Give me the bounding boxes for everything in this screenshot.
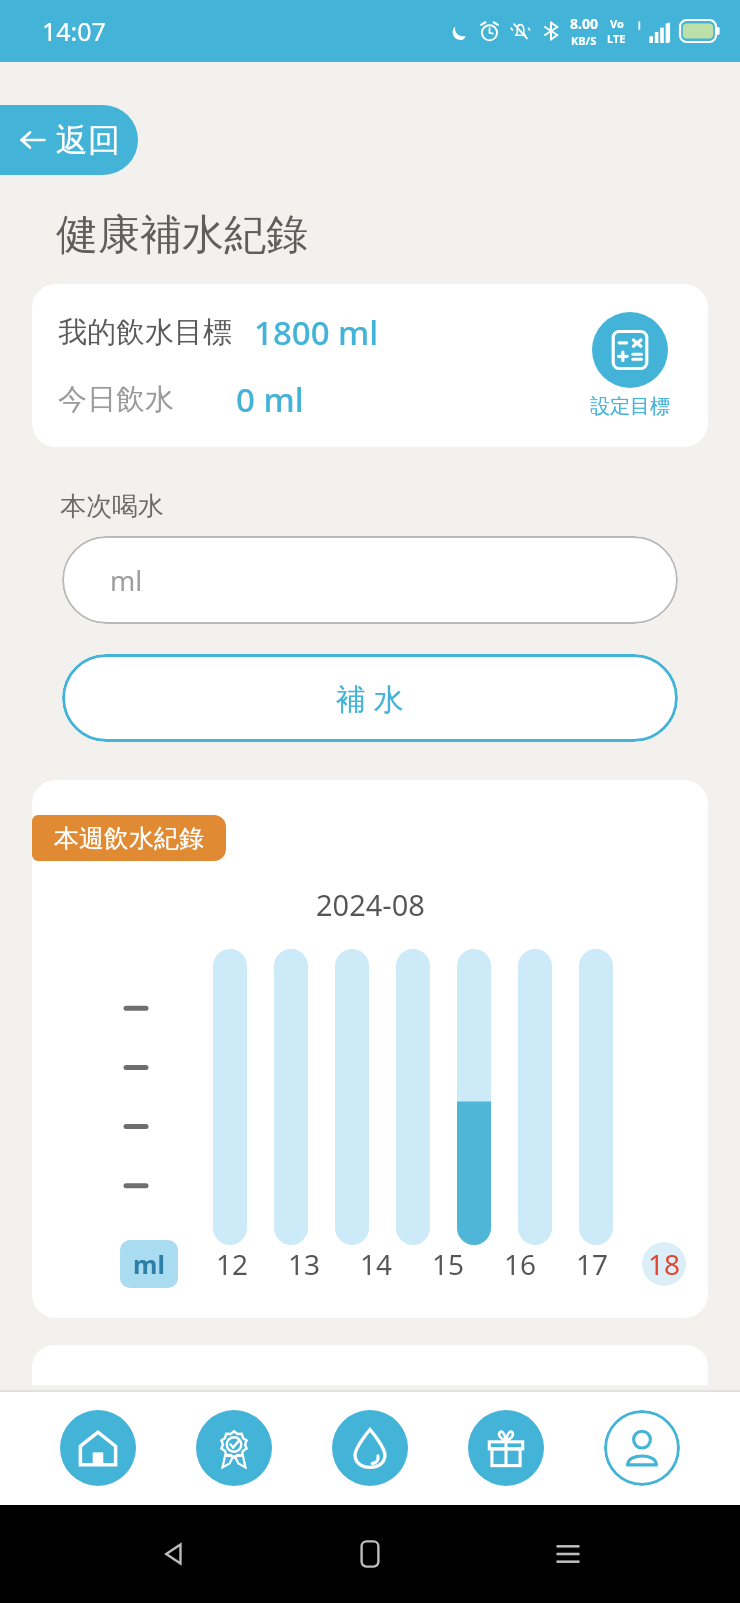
staticText: LTE bbox=[607, 31, 626, 46]
button[interactable]: Water bbox=[332, 1410, 408, 1486]
staticText: Vo bbox=[610, 16, 624, 31]
button[interactable]: Gifts bbox=[468, 1410, 544, 1486]
staticText: 我的飲水目標 bbox=[58, 314, 232, 351]
staticText: 18 bbox=[648, 1245, 681, 1283]
button[interactable]: Back bbox=[148, 1529, 198, 1579]
staticText: 健康補水紀錄 bbox=[56, 209, 308, 262]
staticText: ml bbox=[110, 562, 143, 599]
staticText: KB/S bbox=[571, 33, 597, 48]
button[interactable]: 補 水 bbox=[62, 654, 678, 742]
button[interactable]: 設定目標 bbox=[590, 312, 670, 419]
button[interactable]: Recents bbox=[543, 1529, 593, 1579]
staticText: 12 bbox=[216, 1245, 249, 1283]
staticText: 設定目標 bbox=[590, 394, 670, 419]
staticText: 16 bbox=[504, 1245, 537, 1283]
staticText: 補 水 bbox=[336, 678, 404, 719]
staticText: 14 bbox=[360, 1245, 393, 1283]
staticText: 2024-08 bbox=[316, 885, 425, 924]
staticText: 本次喝水 bbox=[60, 490, 164, 523]
button[interactable]: ml bbox=[62, 536, 678, 624]
staticText: 8.00 bbox=[570, 14, 598, 33]
button[interactable]: Profile bbox=[604, 1410, 680, 1486]
staticText: 17 bbox=[576, 1245, 609, 1283]
staticText: 13 bbox=[288, 1245, 321, 1283]
button[interactable]: Achievements bbox=[196, 1410, 272, 1486]
button[interactable]: Home bbox=[345, 1529, 395, 1579]
staticText: 15 bbox=[432, 1245, 465, 1283]
staticText: 返回 bbox=[56, 120, 120, 160]
staticText: 1800 ml bbox=[254, 310, 379, 355]
staticText: 14:07 bbox=[42, 14, 106, 48]
staticText: ml bbox=[133, 1247, 165, 1281]
button[interactable]: Home bbox=[60, 1410, 136, 1486]
staticText: 今日飲水 bbox=[58, 381, 174, 418]
button[interactable]: 返回 bbox=[0, 105, 138, 175]
staticText: 本週飲水紀錄 bbox=[54, 823, 204, 854]
staticText: 0 ml bbox=[236, 377, 304, 422]
